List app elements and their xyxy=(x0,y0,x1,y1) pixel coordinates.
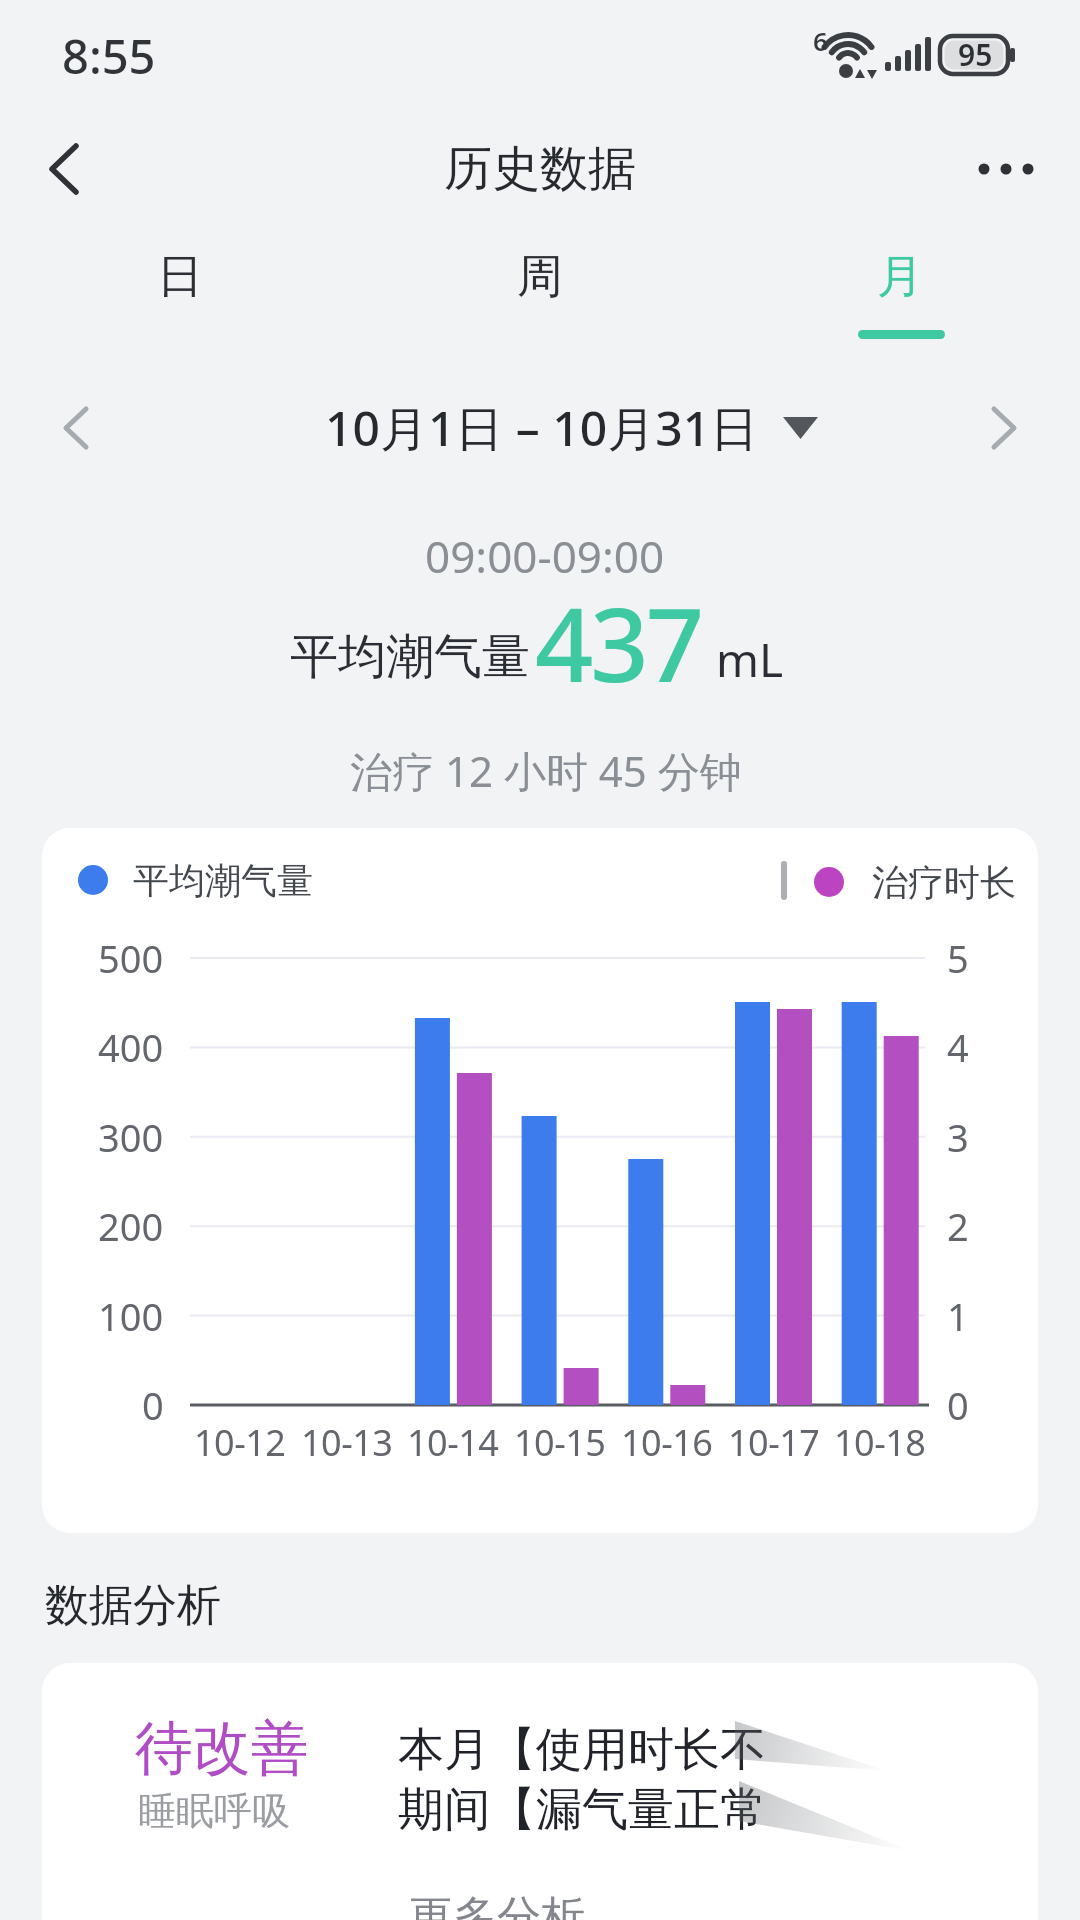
staticText: mL xyxy=(716,628,784,691)
staticText: 平均潮气量 xyxy=(133,858,313,903)
staticText: 更多分析 xyxy=(409,1890,585,1920)
staticText: 10-17 xyxy=(728,1418,820,1467)
staticText: 数据分析 xyxy=(45,1578,221,1633)
button[interactable] xyxy=(40,390,110,466)
staticText: 日 xyxy=(157,248,203,306)
staticText: 睡眠呼吸 xyxy=(138,1787,290,1835)
staticText: 本月【使用时长不 xyxy=(398,1721,766,1779)
staticText: 10-14 xyxy=(407,1418,499,1467)
staticText: 10月1日 – 10月31日 xyxy=(325,395,759,461)
staticText: 待改善 xyxy=(135,1712,309,1785)
button[interactable]: 日 xyxy=(0,222,360,332)
staticText: 5 xyxy=(947,932,969,984)
staticText: 95 xyxy=(958,34,993,75)
button[interactable] xyxy=(962,130,1052,210)
button[interactable] xyxy=(300,390,820,466)
button[interactable] xyxy=(20,130,100,210)
staticText: 09:00-09:00 xyxy=(425,526,665,586)
staticText: 10-16 xyxy=(621,1418,713,1467)
button[interactable] xyxy=(382,1888,642,1920)
staticText: 治疗时长 xyxy=(872,860,1016,905)
staticText: 2 xyxy=(947,1200,969,1252)
staticText: 治疗 12 小时 45 分钟 xyxy=(350,742,742,799)
staticText: 10-13 xyxy=(301,1418,393,1467)
staticText: 300 xyxy=(98,1111,164,1163)
staticText: 6 xyxy=(813,23,828,58)
staticText: 0 xyxy=(947,1379,969,1431)
staticText: 月 xyxy=(877,248,923,306)
staticText: 1 xyxy=(947,1290,969,1342)
staticText: 3 xyxy=(947,1111,969,1163)
staticText: 历史数据 xyxy=(444,139,636,199)
button[interactable] xyxy=(970,390,1040,466)
staticText: 437 xyxy=(535,573,702,712)
staticText: 0 xyxy=(142,1379,164,1431)
staticText: 期间【漏气量正常 xyxy=(398,1781,766,1839)
staticText: 400 xyxy=(98,1021,164,1073)
staticText: 10-18 xyxy=(834,1418,926,1467)
staticText: 100 xyxy=(98,1290,164,1342)
staticText: 4 xyxy=(947,1021,969,1073)
staticText: 10-15 xyxy=(514,1418,606,1467)
staticText: 8:55 xyxy=(62,24,156,88)
button[interactable]: 周 xyxy=(360,222,720,332)
staticText: 周 xyxy=(517,248,563,306)
button[interactable]: 月 xyxy=(720,222,1080,332)
staticText: 10-12 xyxy=(194,1418,286,1467)
staticText: 平均潮气量 xyxy=(290,627,530,687)
staticText: 200 xyxy=(98,1200,164,1252)
staticText: 500 xyxy=(98,932,164,984)
